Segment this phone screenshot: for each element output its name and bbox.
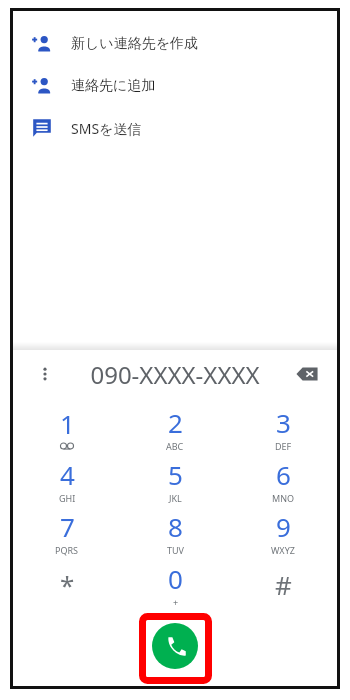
button[interactable]: 5 [121, 454, 229, 506]
button[interactable]: 3 [229, 402, 337, 454]
staticText: 連絡先に追加 [71, 77, 156, 95]
staticText: PQRS [55, 544, 79, 556]
staticText: GHI [59, 492, 76, 504]
button[interactable]: 9 [229, 506, 337, 558]
button[interactable]: 0 [121, 558, 229, 610]
staticText: 7 [60, 509, 75, 544]
button[interactable]: 6 [229, 454, 337, 506]
button[interactable]: 2 [121, 402, 229, 454]
staticText: 0 [168, 561, 183, 596]
staticText: + [173, 596, 179, 608]
button[interactable]: * [13, 558, 121, 610]
staticText: SMSを送信 [71, 119, 142, 138]
staticText: DEF [275, 440, 292, 452]
staticText: 9 [276, 509, 291, 544]
staticText: 8 [168, 509, 183, 544]
staticText: MNO [272, 492, 295, 504]
staticText: 2 [168, 405, 183, 440]
staticText: * [60, 567, 75, 602]
button[interactable]: Call [152, 623, 198, 669]
button[interactable]: More options [31, 360, 59, 388]
button[interactable]: SMSを送信 [13, 107, 337, 149]
staticText: 4 [60, 457, 75, 492]
button[interactable]: 7 [13, 506, 121, 558]
staticText: 3 [276, 405, 291, 440]
staticText: 090-XXXX-XXXX [90, 358, 260, 391]
staticText: TUV [167, 544, 184, 556]
staticText: JKL [169, 492, 182, 504]
staticText: 6 [276, 457, 291, 492]
button[interactable]: Backspace [291, 358, 323, 390]
button[interactable]: 4 [13, 454, 121, 506]
button[interactable]: 1 [13, 402, 121, 454]
staticText: 1 [60, 406, 75, 441]
button[interactable]: 連絡先に追加 [13, 65, 337, 107]
staticText: 5 [168, 457, 183, 492]
staticText: 新しい連絡先を作成 [71, 35, 198, 53]
staticText: # [275, 567, 292, 602]
button[interactable]: 新しい連絡先を作成 [13, 23, 337, 65]
button[interactable]: # [229, 558, 337, 610]
button[interactable]: 8 [121, 506, 229, 558]
staticText: ABC [166, 440, 184, 452]
staticText: WXYZ [271, 544, 295, 556]
